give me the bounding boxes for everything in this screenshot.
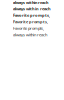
staticText: always within reach bbox=[13, 0, 48, 5]
staticText: Favorite prompts, bbox=[13, 25, 44, 31]
staticText: Favorite prompts, bbox=[13, 19, 48, 24]
staticText: Favorite prompts, bbox=[13, 12, 50, 18]
staticText: always within reach bbox=[13, 32, 47, 37]
staticText: always within reach bbox=[13, 6, 51, 11]
